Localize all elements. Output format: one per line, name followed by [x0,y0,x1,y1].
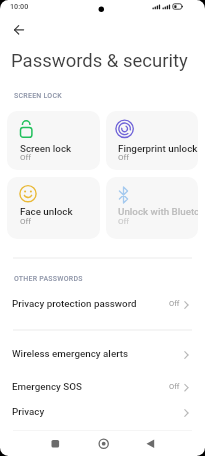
staticText: Off [118,153,130,162]
staticText: Off [20,153,32,162]
staticText: Off [169,299,180,308]
staticText: Emergency SOS [12,381,82,392]
staticText: Privacy protection password [12,298,137,309]
staticText: SCREEN LOCK [14,92,62,100]
button[interactable]: Emergency SOS [0,373,205,401]
staticText: Fingerprint unlock [118,143,198,154]
staticText: Screen lock [20,143,72,154]
staticText: Off [169,382,180,391]
staticText: Privacy [12,406,45,417]
button[interactable]: Wireless emergency alerts [0,341,205,369]
staticText: Passwords & security [11,50,188,72]
staticText: 10:00 [10,2,29,10]
button[interactable]: Fingerprint unlock [106,111,198,170]
button[interactable] [92,432,116,456]
button[interactable] [43,432,67,456]
staticText: Unlock with Bluetooth device [118,206,198,217]
button[interactable]: Screen lock [7,111,100,170]
button[interactable]: Privacy protection password [0,291,205,317]
button[interactable]: Face unlock [7,177,100,239]
button[interactable] [139,432,163,456]
button[interactable] [9,21,29,39]
staticText: Off [20,217,32,226]
staticText: OTHER PASSWORDS [14,275,83,283]
staticText: Off [118,217,130,226]
button[interactable]: Privacy [0,398,205,426]
staticText: Face unlock [20,206,73,217]
button[interactable]: Unlock with Bluetooth device [106,177,198,239]
staticText: Wireless emergency alerts [12,348,129,359]
